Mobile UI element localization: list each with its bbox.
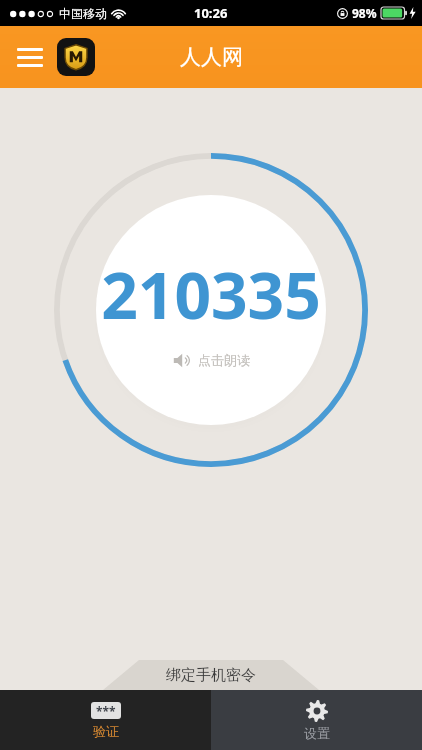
button[interactable]: 设置	[211, 690, 422, 750]
staticText: 10:26	[194, 4, 228, 22]
button[interactable]: 210335	[96, 195, 326, 425]
staticText: 点击朗读	[198, 352, 250, 368]
staticText: 210335	[101, 251, 321, 338]
button[interactable]: ***	[0, 690, 211, 750]
staticText: 绑定手机密令	[166, 666, 256, 685]
staticText: 人人网	[180, 44, 243, 70]
staticText: 中国移动	[59, 6, 107, 21]
staticText: 验证	[93, 723, 119, 739]
staticText: 98%	[352, 5, 377, 21]
button[interactable]: 绑定手机密令	[0, 660, 422, 690]
staticText: 设置	[304, 725, 330, 741]
button[interactable]: 点击朗读	[169, 350, 254, 370]
button[interactable]: Menu	[8, 35, 52, 79]
staticText: ***	[96, 703, 116, 719]
button[interactable]: App logo	[57, 38, 95, 76]
